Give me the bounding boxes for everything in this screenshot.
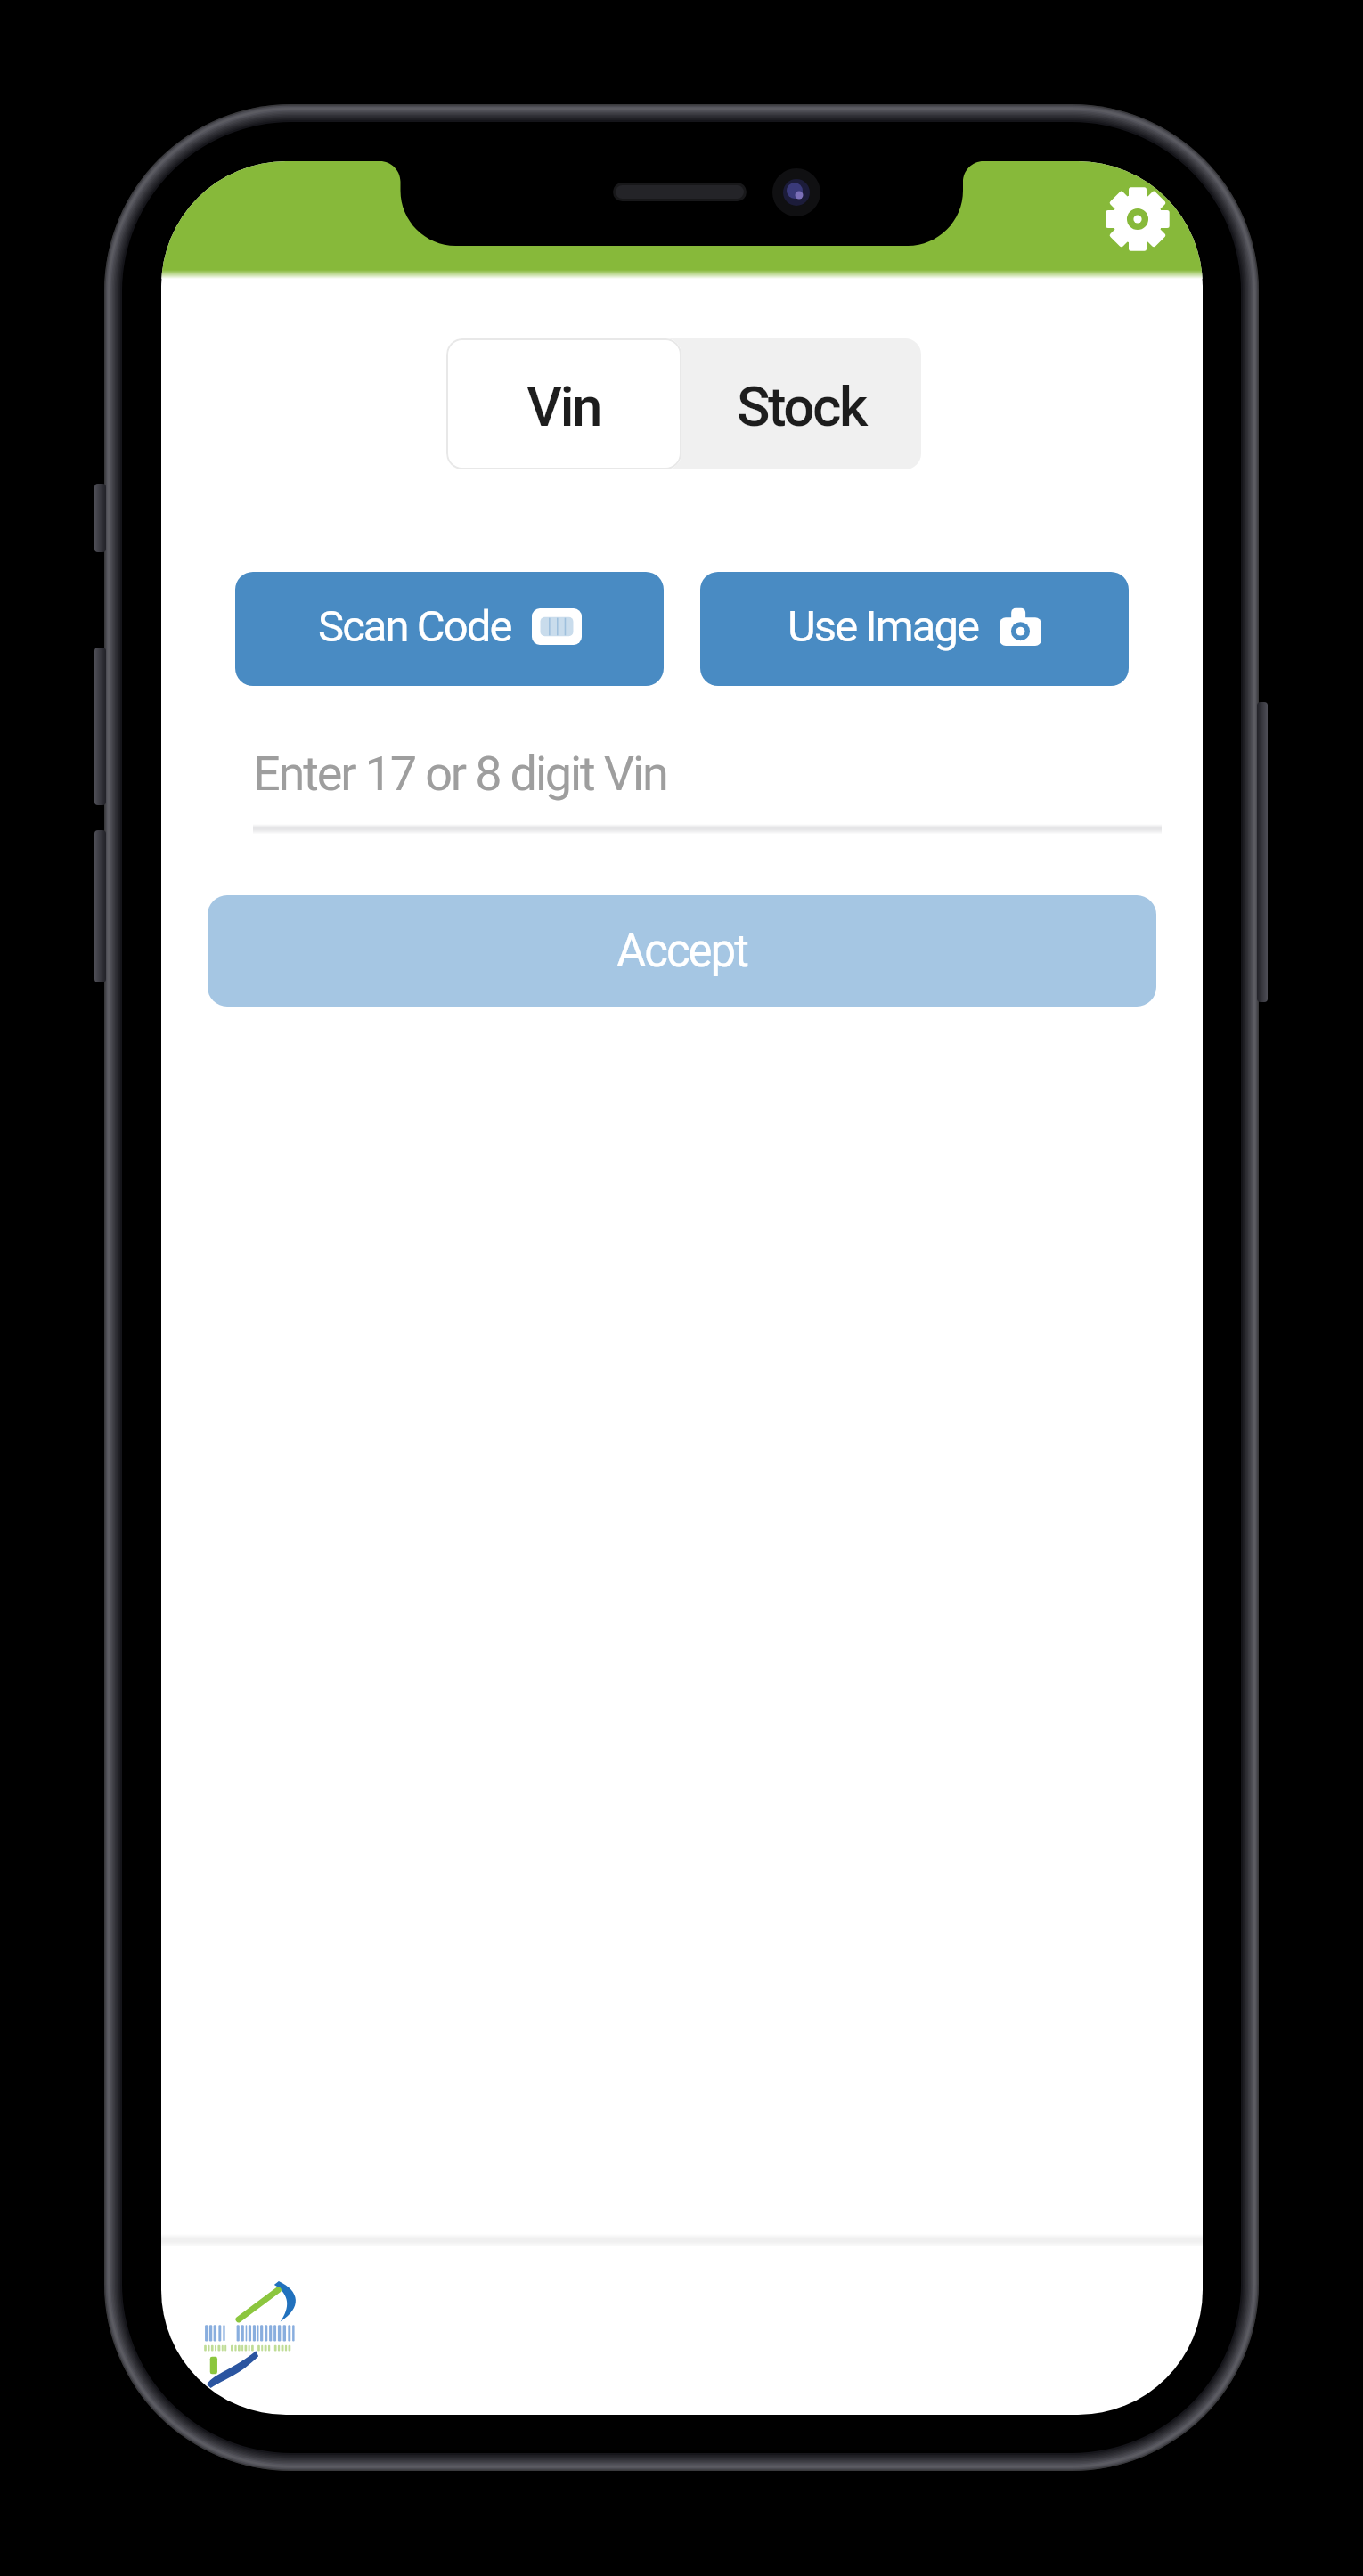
button[interactable]: Scan Code [235, 572, 664, 686]
button[interactable]: Settings [1084, 166, 1191, 273]
button[interactable]: Vin [446, 338, 681, 469]
staticText: Scan Code [318, 601, 511, 652]
staticText: Vin [526, 374, 601, 439]
button[interactable]: Stock [681, 338, 921, 469]
staticText: Use Image [788, 601, 979, 652]
button[interactable]: Use Image [700, 572, 1129, 686]
staticText: Stock [737, 374, 866, 439]
staticText: Accept [616, 925, 747, 978]
button[interactable]: Accept [208, 895, 1156, 1007]
staticText: Enter 17 or 8 digit Vin [253, 746, 667, 802]
